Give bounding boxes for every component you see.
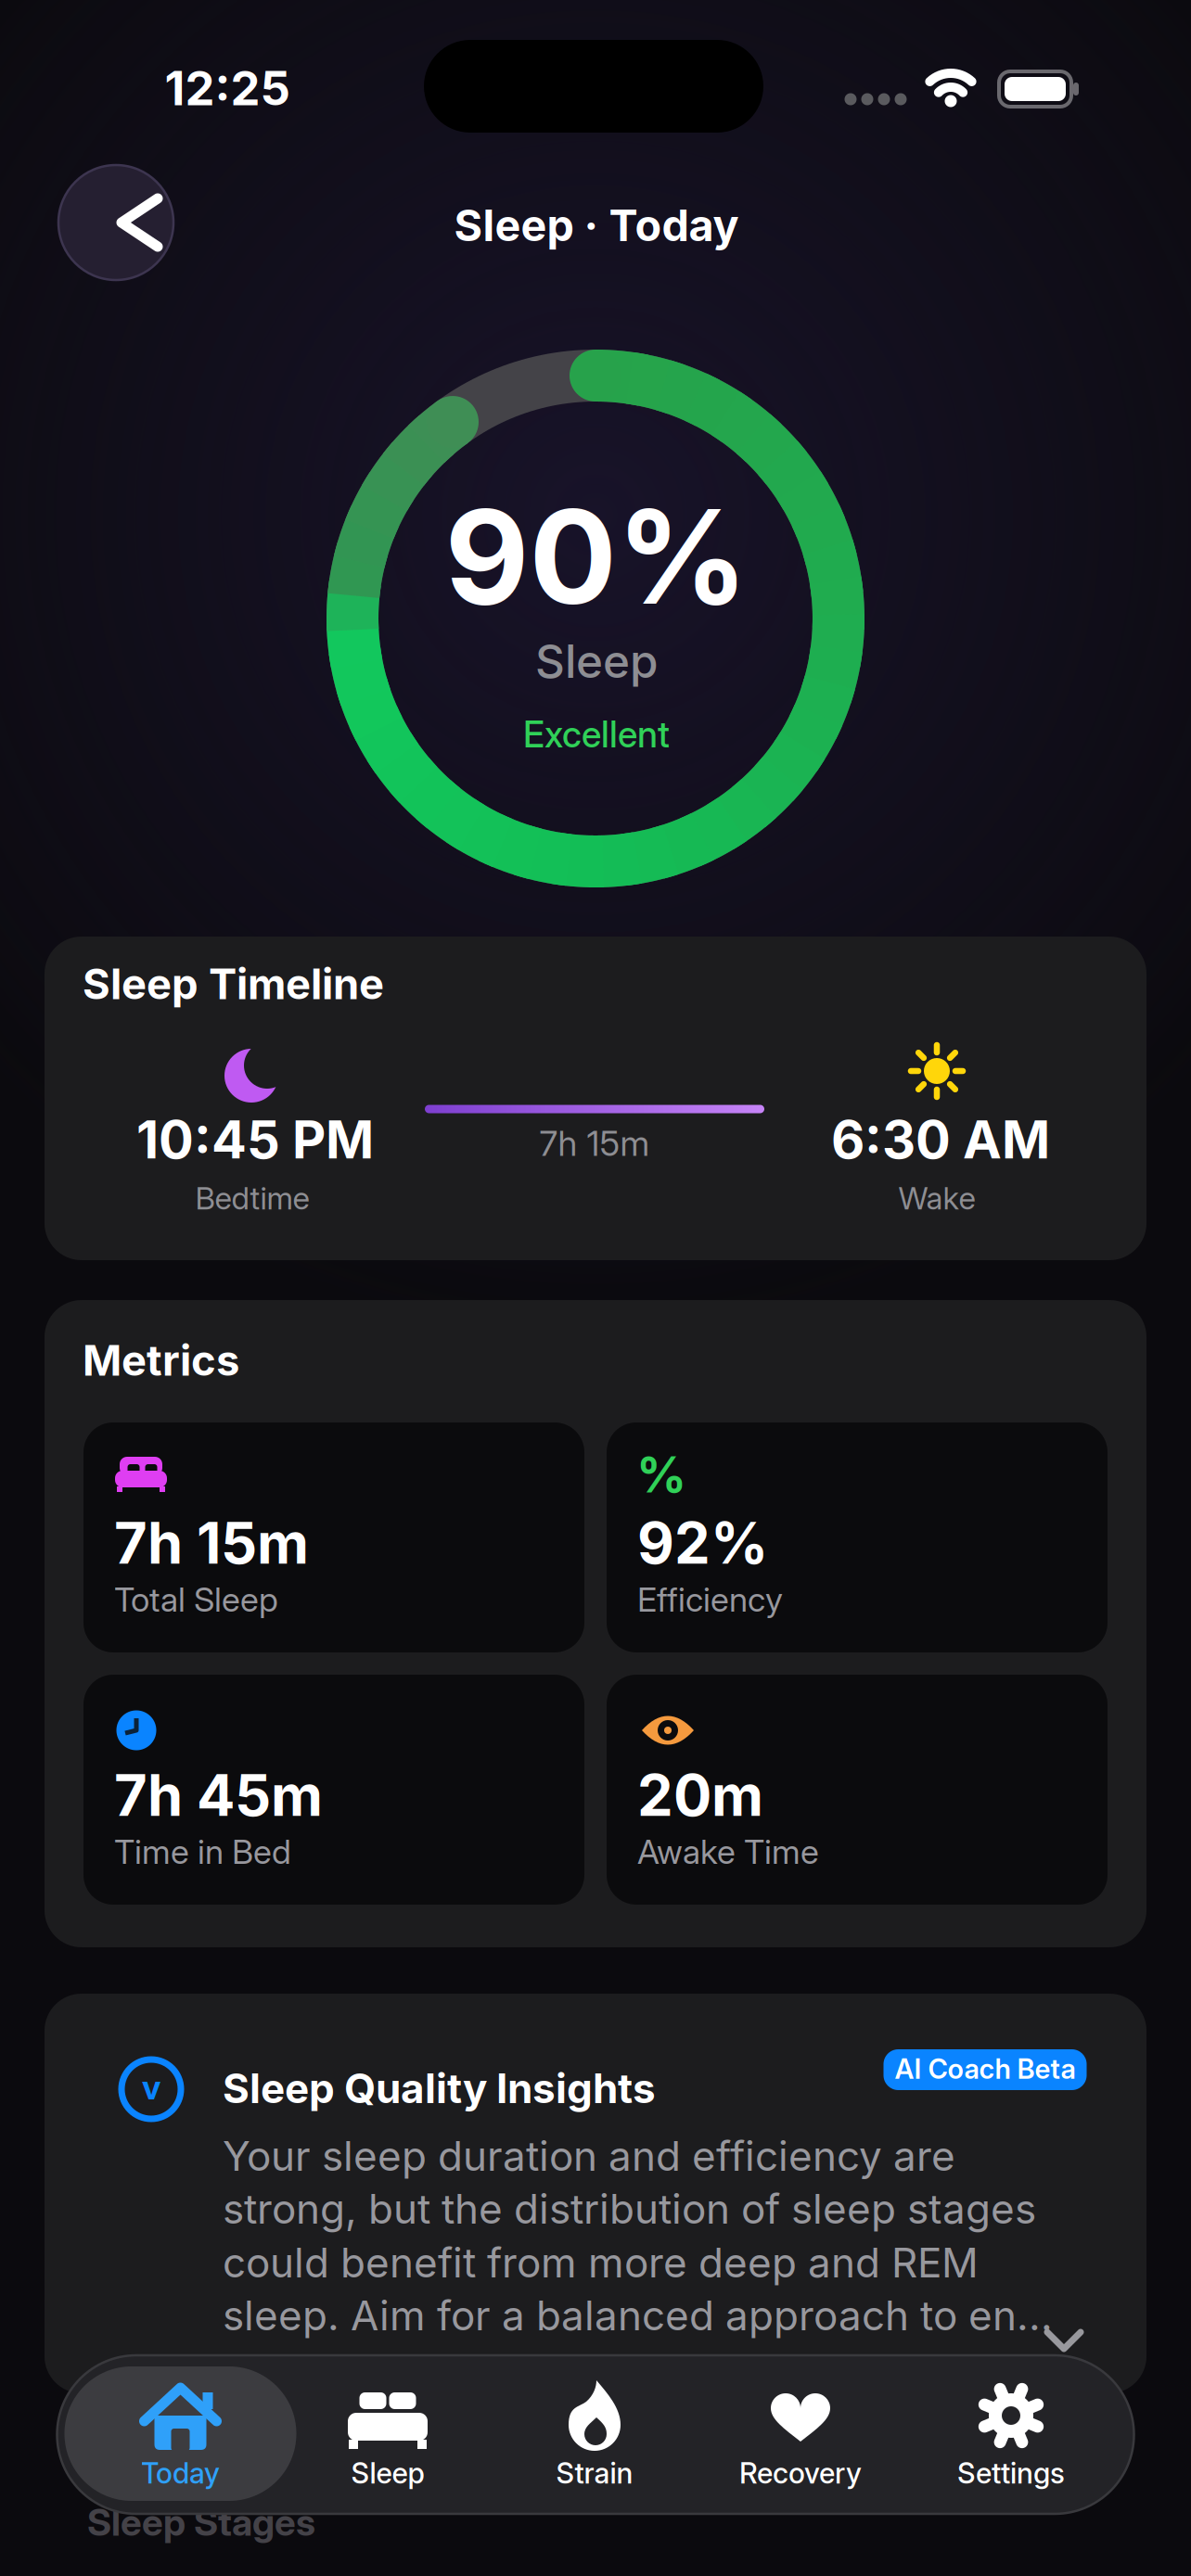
- staticText: Sleep Quality Insights: [223, 2064, 656, 2112]
- staticText: %: [636, 1445, 686, 1504]
- staticText: 7h 45m: [114, 1762, 323, 1829]
- staticText: 7h 15m: [539, 1123, 650, 1164]
- staticText: 90%: [445, 480, 748, 633]
- staticText: 6:30 AM: [831, 1109, 1050, 1170]
- staticText: Sleep: [535, 634, 658, 688]
- staticText: 92%: [637, 1509, 768, 1577]
- button[interactable]: Settings: [928, 2355, 1095, 2514]
- staticText: Sleep Timeline: [83, 959, 384, 1009]
- staticText: Strain: [556, 2456, 633, 2490]
- button[interactable]: Today: [64, 2366, 296, 2501]
- staticText: Today: [141, 2456, 220, 2490]
- staticText: Settings: [957, 2456, 1065, 2490]
- staticText: Excellent: [523, 713, 670, 756]
- staticText: Metrics: [83, 1336, 239, 1385]
- staticText: Bedtime: [195, 1180, 309, 1216]
- staticText: Time in Bed: [114, 1832, 291, 1872]
- button[interactable]: Recovery: [717, 2355, 884, 2514]
- button[interactable]: [58, 165, 173, 280]
- staticText: v: [142, 2068, 160, 2107]
- staticText: sleep. Aim for a balanced approach to en…: [223, 2291, 1053, 2339]
- staticText: 7h 15m: [114, 1509, 309, 1577]
- staticText: Sleep: [351, 2456, 424, 2490]
- staticText: Total Sleep: [114, 1580, 278, 1619]
- staticText: Wake: [898, 1180, 975, 1216]
- staticText: 10:45 PM: [136, 1109, 374, 1170]
- button[interactable]: Sleep: [304, 2355, 471, 2514]
- staticText: Awake Time: [637, 1832, 819, 1872]
- staticText: AI Coach Beta: [895, 2053, 1076, 2085]
- staticText: 20m: [637, 1762, 763, 1829]
- button[interactable]: Strain: [511, 2355, 678, 2514]
- staticText: Recovery: [739, 2456, 862, 2490]
- staticText: Your sleep duration and efficiency are: [223, 2132, 955, 2180]
- staticText: 12:25: [165, 60, 290, 116]
- staticText: Efficiency: [637, 1580, 783, 1619]
- staticText: strong, but the distribution of sleep st…: [223, 2185, 1036, 2233]
- staticText: Sleep · Today: [454, 200, 739, 251]
- button[interactable]: [1044, 2328, 1084, 2353]
- staticText: could benefit from more deep and REM: [223, 2238, 979, 2287]
- staticText: Sleep Stages: [87, 2500, 315, 2544]
